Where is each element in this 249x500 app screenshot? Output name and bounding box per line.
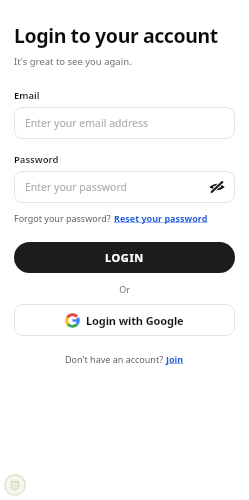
staticText: Login to your account bbox=[14, 22, 218, 49]
staticText: Enter your email address bbox=[25, 116, 226, 130]
staticText: Or bbox=[119, 283, 130, 295]
staticText: Reset your password bbox=[114, 212, 208, 224]
staticText: Password bbox=[14, 153, 59, 166]
staticText: Forgot your password? bbox=[14, 212, 114, 224]
staticText: It's great to see you again. bbox=[14, 55, 132, 68]
button[interactable]: LOGIN bbox=[14, 242, 235, 273]
button[interactable]: Enter your password bbox=[14, 171, 235, 203]
button[interactable]: Reset your password bbox=[114, 212, 208, 224]
button[interactable]: Show password bbox=[208, 178, 226, 196]
button[interactable]: Join bbox=[166, 353, 184, 365]
staticText: Email bbox=[14, 89, 40, 102]
staticText: LOGIN bbox=[105, 250, 144, 265]
button[interactable]: Enter your email address bbox=[14, 107, 235, 139]
button[interactable]: Login with Google bbox=[14, 304, 235, 336]
staticText: Enter your password bbox=[25, 180, 208, 194]
staticText: Join bbox=[166, 353, 184, 365]
other: Badge bbox=[4, 474, 26, 496]
staticText: Login with Google bbox=[86, 313, 184, 328]
staticText: Don't have an account? bbox=[65, 353, 166, 365]
